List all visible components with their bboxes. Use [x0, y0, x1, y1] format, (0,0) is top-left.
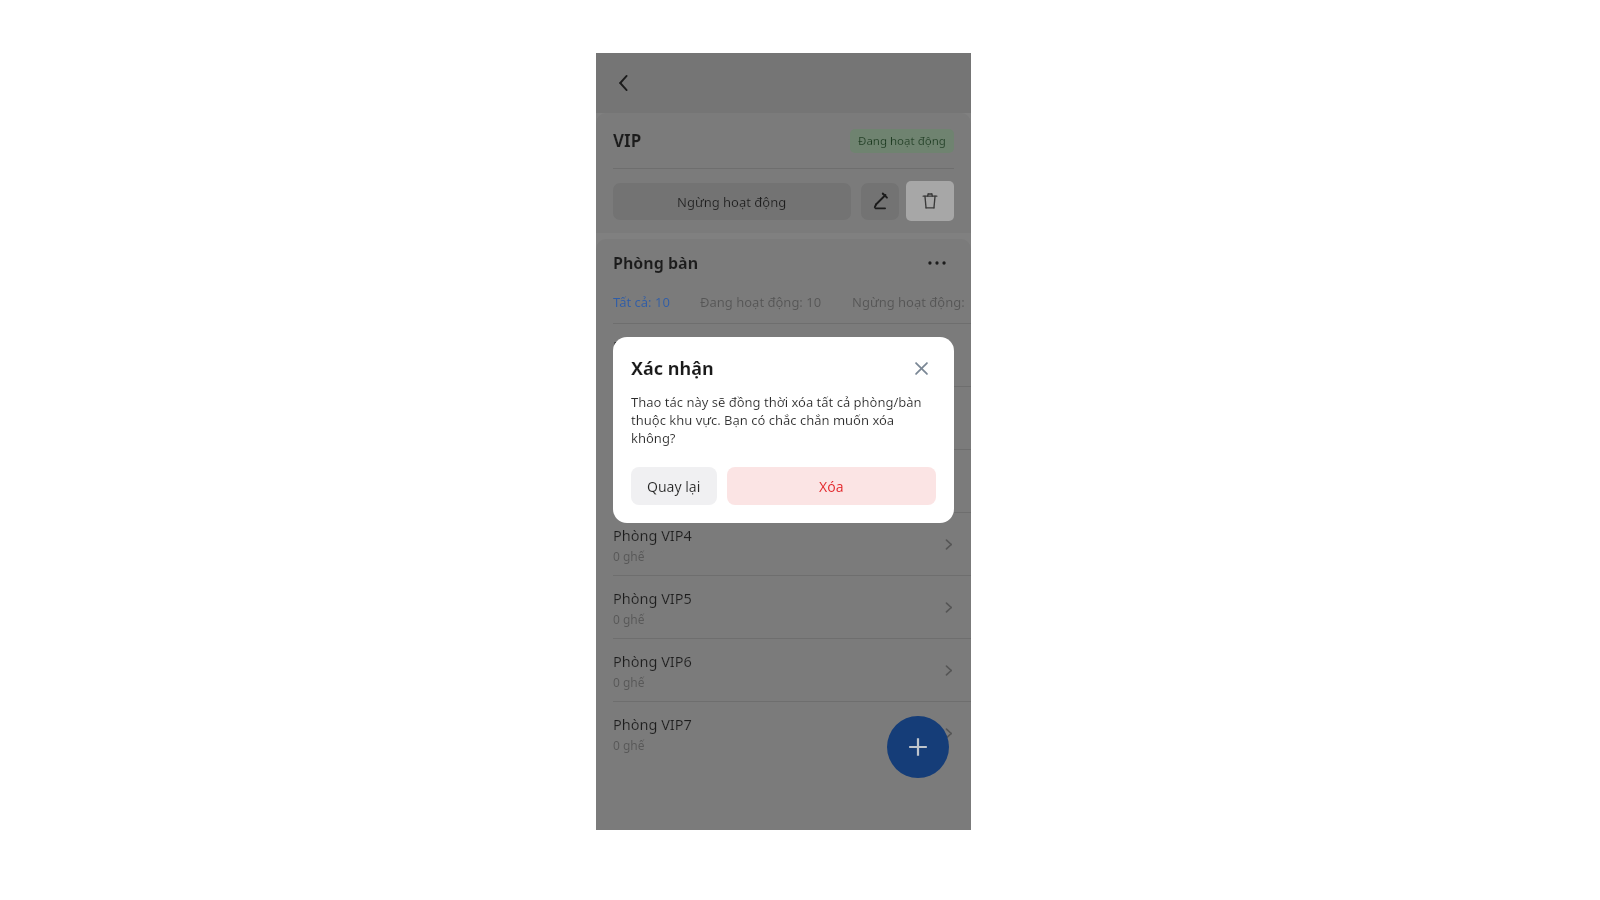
button[interactable]: Phòng VIP2 — [596, 386, 971, 449]
button[interactable]: Delete — [906, 181, 954, 221]
button[interactable]: Đang hoạt động: 10 — [700, 293, 822, 311]
staticText: Thao tác này sẽ đồng thời xóa tất cả phò… — [631, 393, 936, 447]
staticText: Phòng VIP2 — [613, 399, 692, 419]
button[interactable]: Close — [906, 353, 936, 383]
button[interactable]: Ngừng hoạt động: 0 — [852, 293, 971, 311]
button[interactable]: Phòng VIP1 — [596, 323, 971, 386]
staticText: Phòng VIP5 — [613, 588, 692, 608]
staticText: VIP — [613, 129, 642, 152]
staticText: Quay lại — [647, 477, 701, 496]
staticText: Đang hoạt động: 10 — [700, 293, 822, 311]
staticText: Phòng VIP4 — [613, 525, 692, 545]
staticText: Phòng VIP7 — [613, 714, 692, 734]
staticText: 0 ghế — [613, 737, 645, 753]
staticText: Xác nhận — [631, 356, 714, 381]
staticText: Tất cả: 10 — [613, 293, 670, 311]
staticText: Phòng VIP6 — [613, 651, 692, 671]
button[interactable]: Edit — [861, 183, 899, 220]
button[interactable]: Phòng VIP7 — [596, 701, 971, 764]
button[interactable]: Tất cả: 10 — [613, 293, 670, 311]
button[interactable]: Back — [602, 61, 646, 105]
button[interactable]: Phòng VIP4 — [596, 512, 971, 575]
staticText: Xóa — [819, 477, 844, 496]
button[interactable]: Phòng VIP6 — [596, 638, 971, 701]
button[interactable]: Quay lại — [631, 467, 717, 505]
button[interactable]: Add — [887, 716, 949, 778]
staticText: Phòng VIP3 — [613, 462, 692, 482]
button[interactable]: More options — [920, 246, 954, 280]
staticText: 0 ghế — [613, 422, 645, 438]
staticText: Phòng VIP1 — [613, 336, 692, 356]
button[interactable]: Ngừng hoạt động — [613, 183, 851, 220]
button[interactable]: Xóa — [727, 467, 936, 505]
staticText: 0 ghế — [613, 611, 645, 627]
staticText: 0 ghế — [613, 359, 645, 375]
staticText: 0 ghế — [613, 674, 645, 690]
staticText: Ngừng hoạt động — [677, 193, 787, 211]
button[interactable]: Phòng VIP3 — [596, 449, 971, 512]
staticText: 0 ghế — [613, 548, 645, 564]
staticText: Phòng bàn — [613, 252, 699, 274]
button[interactable]: Phòng VIP5 — [596, 575, 971, 638]
staticText: Đang hoạt động — [858, 133, 946, 149]
staticText: 0 ghế — [613, 485, 645, 501]
staticText: Ngừng hoạt động: 0 — [852, 293, 971, 311]
